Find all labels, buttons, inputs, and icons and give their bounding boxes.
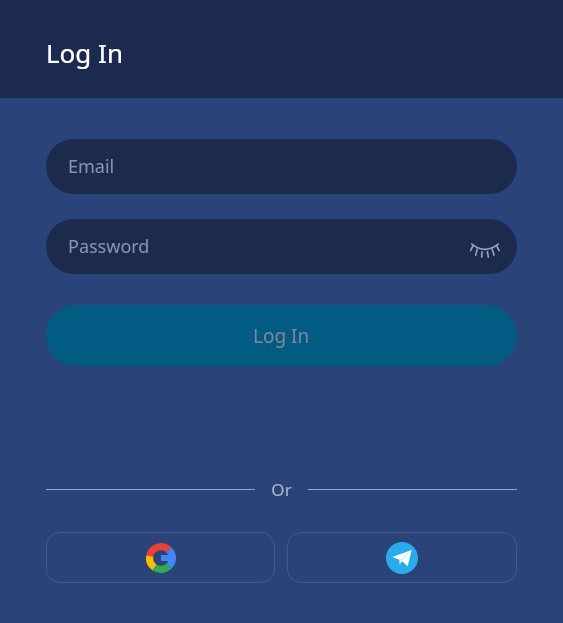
staticText: Log In bbox=[253, 323, 310, 349]
button[interactable]: Sign in with Telegram bbox=[287, 532, 517, 583]
button[interactable]: Show password bbox=[467, 229, 503, 265]
button[interactable]: Sign in with Google bbox=[46, 532, 275, 583]
staticText: Or bbox=[271, 478, 292, 501]
staticText: Log In bbox=[46, 35, 123, 70]
staticText: Password bbox=[68, 234, 150, 259]
button[interactable]: Email bbox=[46, 139, 517, 194]
button[interactable]: Password bbox=[46, 219, 517, 274]
button[interactable]: Log In bbox=[46, 305, 517, 366]
staticText: Email bbox=[68, 154, 115, 179]
